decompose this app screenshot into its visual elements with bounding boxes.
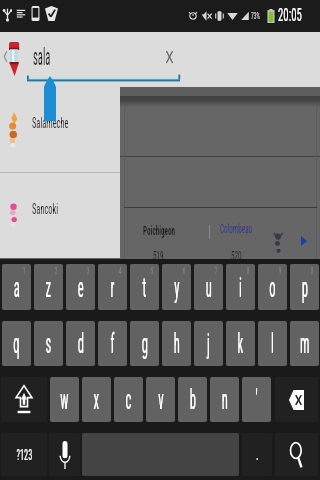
button[interactable]: l — [258, 321, 287, 366]
button[interactable]: c — [114, 377, 143, 422]
staticText: 3 — [87, 266, 89, 277]
staticText: Poichigeon — [143, 223, 175, 238]
button[interactable]: Symbols — [1, 433, 47, 476]
button[interactable]: Navigate up — [2, 38, 24, 78]
button[interactable]: h — [162, 321, 191, 366]
button[interactable]: a — [2, 264, 31, 310]
button[interactable]: k — [226, 321, 255, 366]
staticText: g — [142, 327, 148, 360]
button[interactable]: p — [290, 264, 319, 310]
staticText: sala — [33, 44, 50, 71]
staticText: ' — [255, 383, 258, 416]
staticText: 0 — [311, 266, 313, 277]
button[interactable]: Period — [242, 433, 272, 476]
staticText: e — [78, 271, 84, 304]
staticText: u — [206, 271, 212, 304]
button[interactable]: f — [98, 321, 127, 366]
button[interactable]: z — [34, 264, 63, 310]
staticText: b — [190, 383, 196, 416]
staticText: o — [269, 271, 276, 304]
button[interactable]: o — [258, 264, 287, 310]
staticText: 9 — [279, 266, 281, 277]
button[interactable]: t — [130, 264, 159, 310]
button[interactable]: Salamèche — [0, 87, 120, 172]
button[interactable]: i — [226, 264, 255, 310]
button[interactable]: ' — [242, 377, 271, 422]
staticText: 1 — [23, 266, 25, 277]
staticText: 73% — [251, 11, 260, 22]
button[interactable]: Shift — [1, 377, 47, 422]
staticText: r — [110, 271, 115, 304]
staticText: i — [239, 271, 242, 304]
staticText: ?123 — [16, 446, 32, 464]
staticText: x — [94, 383, 99, 416]
button[interactable]: Poichigeon — [124, 207, 317, 259]
staticText: 6 — [183, 266, 185, 277]
button[interactable]: v — [146, 377, 175, 422]
button[interactable]: Search — [275, 433, 318, 476]
button[interactable]: g — [130, 321, 159, 366]
button[interactable]: b — [178, 377, 207, 422]
staticText: a — [14, 271, 20, 304]
staticText: l — [271, 327, 274, 360]
staticText: 2 — [55, 266, 57, 277]
staticText: w — [60, 383, 69, 416]
button[interactable]: u — [194, 264, 223, 310]
staticText: s — [46, 327, 51, 360]
staticText: m — [300, 327, 310, 360]
button[interactable]: y — [162, 264, 191, 310]
staticText: . — [256, 445, 259, 464]
staticText: n — [222, 383, 228, 416]
staticText: Colombeau — [220, 221, 252, 236]
button[interactable]: x — [82, 377, 111, 422]
button[interactable]: s — [34, 321, 63, 366]
staticText: y — [174, 271, 180, 304]
button[interactable]: j — [194, 321, 223, 366]
button[interactable]: m — [290, 321, 319, 366]
button[interactable]: Backspace — [275, 377, 318, 422]
staticText: p — [302, 271, 308, 304]
staticText: 519 — [153, 248, 164, 263]
staticText: v — [158, 383, 164, 416]
button[interactable]: r — [98, 264, 127, 310]
staticText: h — [174, 327, 180, 360]
button[interactable]: Sancoki — [0, 173, 120, 258]
staticText: j — [207, 327, 210, 360]
staticText: z — [46, 271, 51, 304]
staticText: q — [13, 327, 20, 360]
button[interactable]: n — [210, 377, 239, 422]
staticText: 20:05 — [278, 4, 302, 25]
button[interactable]: d — [66, 321, 95, 366]
staticText: t — [142, 271, 146, 304]
button[interactable]: w — [50, 377, 79, 422]
staticText: 8 — [247, 266, 249, 277]
button[interactable] — [124, 106, 317, 157]
staticText: Sancoki — [32, 200, 58, 218]
staticText: 4 — [119, 266, 121, 277]
staticText: Salamèche — [32, 114, 69, 132]
staticText: 7 — [215, 266, 217, 277]
button[interactable]: Voice input — [49, 433, 80, 476]
staticText: f — [110, 327, 115, 360]
button[interactable]: q — [2, 321, 31, 366]
staticText: 5 — [151, 266, 153, 277]
staticText: k — [238, 327, 243, 360]
button[interactable]: Clear query — [164, 50, 175, 64]
button[interactable]: e — [66, 264, 95, 310]
staticText: 520 — [231, 248, 242, 263]
staticText: d — [78, 327, 84, 360]
staticText: c — [126, 383, 131, 416]
